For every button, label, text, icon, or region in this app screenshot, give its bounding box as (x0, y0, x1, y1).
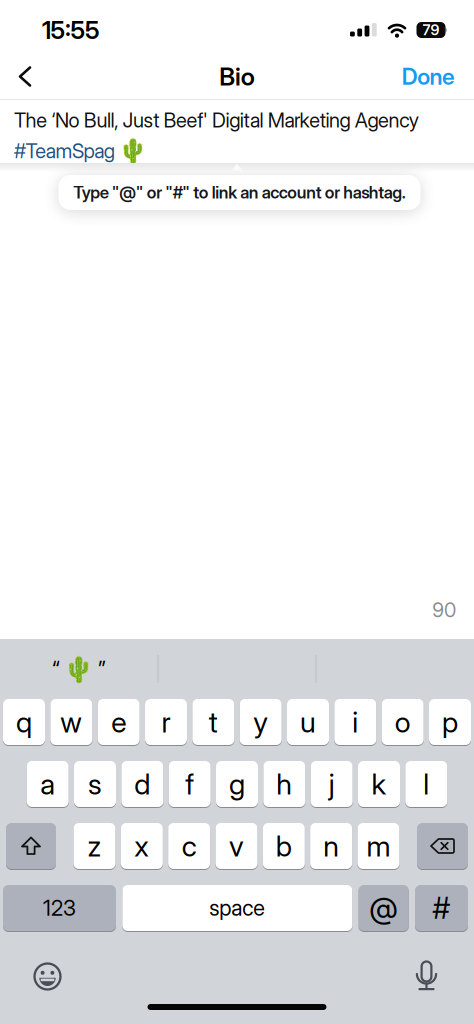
staticText: 123 (43, 895, 76, 921)
button[interactable]: # (415, 885, 468, 931)
staticText: g (229, 767, 245, 801)
staticText: “ 🌵 ” (52, 654, 106, 683)
staticText: 90 (432, 598, 456, 622)
button[interactable]: b (263, 823, 305, 869)
staticText: i (352, 705, 358, 739)
staticText: Bio (219, 62, 255, 91)
button[interactable]: v (215, 823, 257, 869)
staticText: # (432, 890, 450, 926)
button[interactable]: k (358, 761, 400, 807)
button[interactable]: f (169, 761, 211, 807)
button[interactable]: t (192, 699, 234, 745)
staticText: v (229, 829, 244, 863)
button[interactable]: Dictation (413, 960, 474, 994)
staticText: k (371, 767, 386, 801)
button[interactable]: u (287, 699, 329, 745)
staticText: @ (369, 890, 398, 926)
button[interactable]: x (121, 823, 163, 869)
button[interactable]: e (98, 699, 140, 745)
staticText: c (182, 829, 197, 863)
staticText: s (88, 767, 102, 801)
staticText: t (209, 705, 218, 739)
button[interactable]: h (263, 761, 305, 807)
staticText: m (366, 829, 390, 863)
staticText: r (161, 705, 170, 739)
staticText: q (16, 705, 32, 739)
staticText: z (87, 829, 101, 863)
button[interactable]: Delete (417, 823, 468, 869)
staticText: b (276, 829, 292, 863)
button[interactable]: 123 (3, 885, 116, 931)
button[interactable]: Done (402, 63, 474, 90)
staticText: space (209, 895, 265, 921)
staticText: 15:55 (42, 15, 100, 45)
staticText: Done (402, 63, 455, 90)
button[interactable]: Emoji keyboard (0, 962, 62, 993)
button[interactable]: o (382, 699, 424, 745)
staticText: w (60, 705, 82, 739)
staticText: f (185, 767, 194, 801)
staticText: j (329, 767, 335, 801)
button[interactable]: Back (0, 57, 33, 95)
button[interactable]: j (311, 761, 353, 807)
button[interactable]: q (3, 699, 45, 745)
staticText: y (253, 705, 268, 739)
staticText: h (276, 767, 292, 801)
button[interactable]: Shift (6, 823, 56, 869)
button[interactable]: Bio text (0, 100, 474, 163)
staticText: a (40, 767, 55, 801)
button[interactable]: z (73, 823, 115, 869)
button[interactable]: @ (359, 885, 409, 931)
button[interactable]: n (310, 823, 352, 869)
staticText: e (111, 705, 126, 739)
button[interactable]: i (334, 699, 376, 745)
staticText: 79 (423, 21, 439, 39)
button[interactable]: l (405, 761, 447, 807)
staticText: l (423, 767, 429, 801)
button[interactable]: a (27, 761, 69, 807)
staticText: #TeamSpag (14, 139, 115, 163)
staticText: p (442, 705, 458, 739)
button[interactable]: g (216, 761, 258, 807)
button[interactable]: m (357, 823, 399, 869)
staticText: Type "@" or "#" to link an account or ha… (73, 182, 406, 203)
button[interactable]: y (240, 699, 282, 745)
staticText: 🌵 (118, 137, 148, 165)
button[interactable]: space (122, 885, 352, 931)
button[interactable]: Suggestion cactus (0, 639, 157, 699)
staticText: x (134, 829, 149, 863)
staticText: o (395, 705, 411, 739)
button[interactable]: d (121, 761, 163, 807)
button[interactable]: s (74, 761, 116, 807)
button[interactable]: r (145, 699, 187, 745)
button[interactable]: w (50, 699, 92, 745)
staticText: u (300, 705, 316, 739)
staticText: n (323, 829, 339, 863)
staticText: d (134, 767, 150, 801)
button[interactable]: c (168, 823, 210, 869)
staticText: The ‘No Bull, Just Beef' Digital Marketi… (14, 108, 419, 132)
button[interactable]: p (429, 699, 471, 745)
